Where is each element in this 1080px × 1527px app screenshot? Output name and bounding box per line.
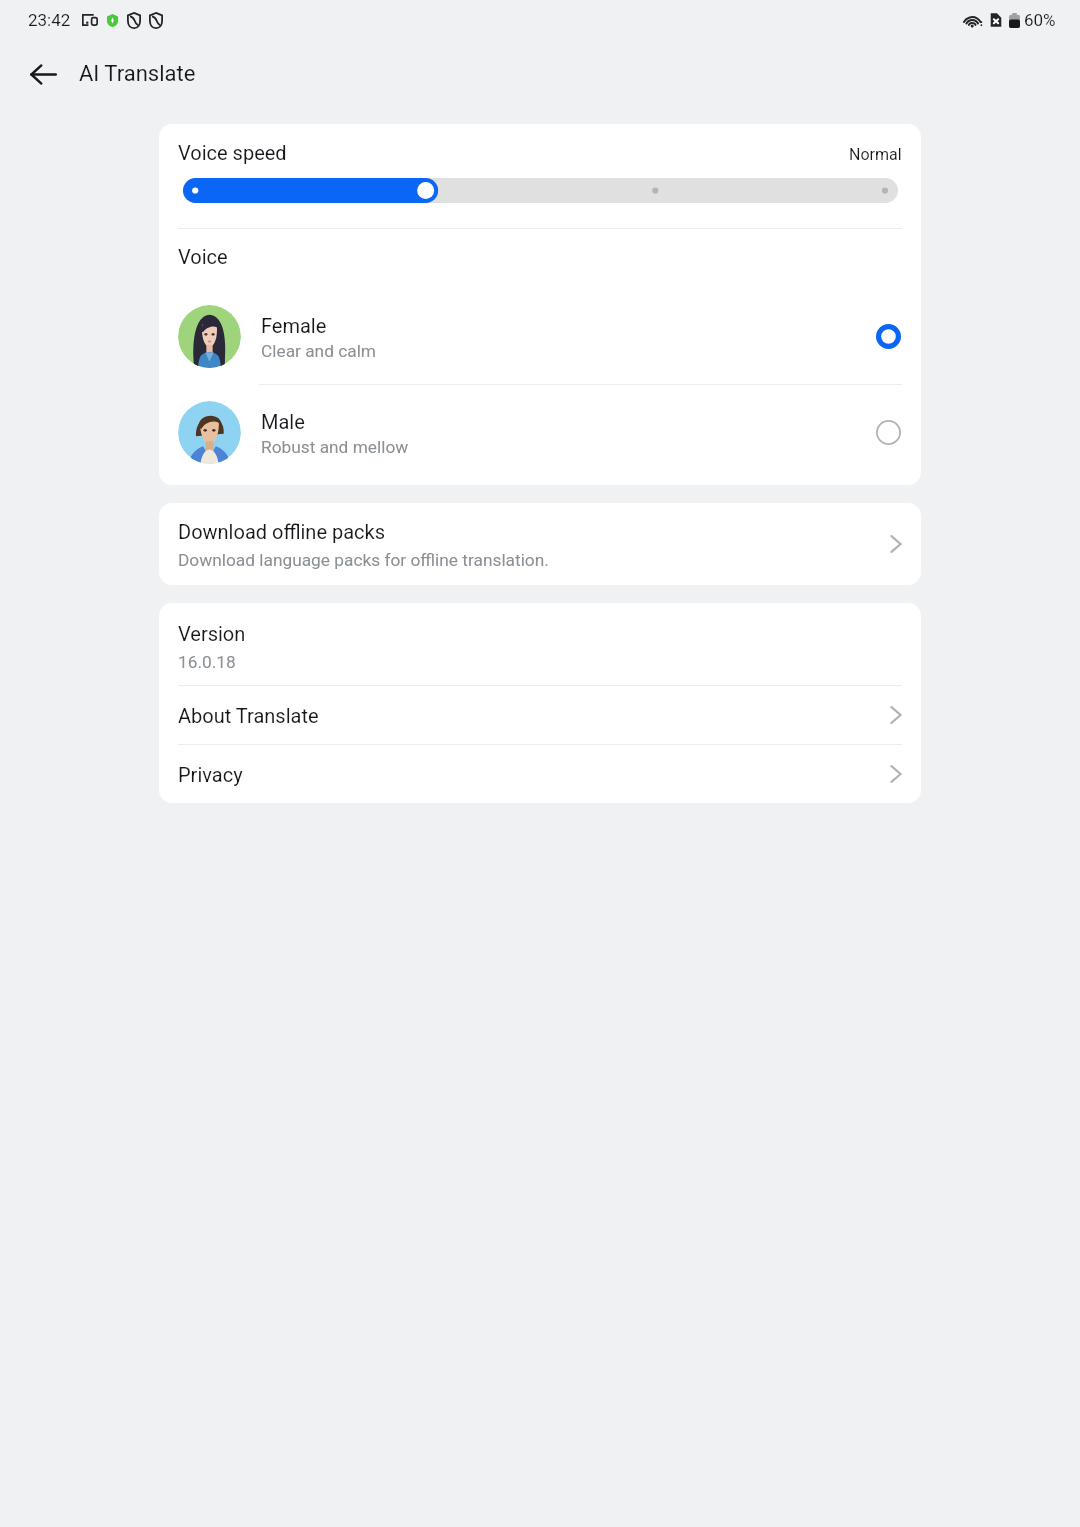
staticText: 23:42: [28, 10, 71, 30]
staticText: Female: [261, 314, 327, 337]
staticText: Voice speed: [178, 141, 287, 164]
staticText: Version: [178, 622, 246, 645]
button[interactable]: Male: [159, 382, 921, 482]
button[interactable]: Female: [159, 286, 921, 386]
button[interactable]: Version: [159, 603, 921, 685]
button[interactable]: Privacy: [159, 745, 921, 803]
staticText: Voice: [178, 245, 228, 268]
staticText: Clear and calm: [261, 341, 377, 361]
button[interactable]: Select voice: [866, 410, 910, 454]
staticText: Male: [261, 410, 305, 433]
staticText: Robust and mellow: [261, 437, 409, 457]
staticText: 16.0.18: [178, 652, 236, 672]
staticText: Download language packs for offline tran…: [178, 550, 549, 570]
staticText: AI Translate: [79, 61, 196, 87]
staticText: Download offline packs: [178, 520, 385, 543]
staticText: About Translate: [178, 704, 319, 727]
staticText: 60%: [1024, 10, 1056, 30]
button[interactable]: Download offline packs: [159, 503, 921, 585]
staticText: Privacy: [178, 763, 243, 786]
button[interactable]: Selected voice: [866, 314, 910, 358]
staticText: Normal: [849, 145, 902, 164]
button[interactable]: About Translate: [159, 686, 921, 744]
button[interactable]: Voice speed slider: [183, 178, 898, 203]
button[interactable]: Back: [18, 49, 68, 99]
